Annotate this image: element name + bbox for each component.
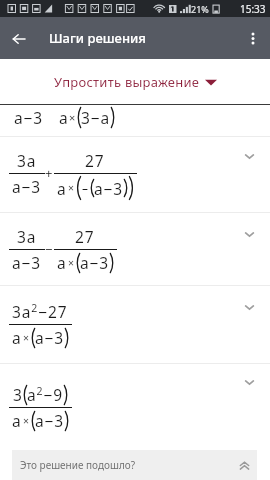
- staticText: Это решение подошло?: [20, 458, 136, 472]
- staticText: a−3: [35, 410, 65, 431]
- staticText: a2−9: [27, 384, 64, 405]
- staticText: a: [12, 327, 22, 348]
- button[interactable]: Expand step: [238, 145, 260, 167]
- staticText: Шаги решения: [49, 29, 146, 47]
- staticText: ×: [69, 110, 77, 125]
- staticText: a−3: [14, 107, 44, 128]
- staticText: a: [57, 178, 67, 199]
- staticText: a−3: [35, 327, 65, 348]
- button[interactable]: More options: [236, 21, 270, 55]
- button[interactable]: Это решение подошло?: [12, 450, 257, 480]
- button[interactable]: Expand step: [238, 296, 260, 318]
- staticText: 3a2−27: [12, 301, 68, 322]
- button[interactable]: Упростить выражение: [0, 59, 270, 104]
- staticText: 21%: [191, 3, 209, 15]
- staticText: 3a: [17, 150, 37, 171]
- staticText: 3: [13, 384, 23, 405]
- button[interactable]: Back: [0, 20, 37, 57]
- button[interactable]: 3a: [0, 213, 270, 285]
- button[interactable]: 3a2−27: [0, 286, 270, 363]
- button[interactable]: 3a: [0, 137, 270, 212]
- staticText: 3−a: [81, 107, 111, 128]
- staticText: a: [57, 252, 67, 273]
- staticText: ×: [23, 331, 30, 345]
- staticText: 3a: [17, 226, 37, 247]
- staticText: Упростить выражение: [54, 73, 200, 91]
- button[interactable]: Expand step: [238, 371, 260, 393]
- button[interactable]: 3: [0, 364, 270, 450]
- staticText: a−3: [94, 178, 124, 199]
- button[interactable]: Expand step: [238, 223, 260, 245]
- staticText: ×: [68, 256, 75, 270]
- staticText: 15:33: [240, 2, 266, 16]
- staticText: +: [45, 164, 54, 182]
- staticText: a: [59, 107, 69, 128]
- staticText: 27: [85, 150, 105, 171]
- staticText: ×: [23, 414, 30, 428]
- staticText: −: [45, 240, 54, 258]
- staticText: a: [12, 410, 22, 431]
- staticText: a−3: [12, 176, 42, 197]
- staticText: 27: [75, 226, 95, 247]
- staticText: ×: [68, 181, 75, 195]
- staticText: a−3: [80, 252, 110, 273]
- staticText: –: [82, 180, 89, 196]
- staticText: a−3: [12, 252, 42, 273]
